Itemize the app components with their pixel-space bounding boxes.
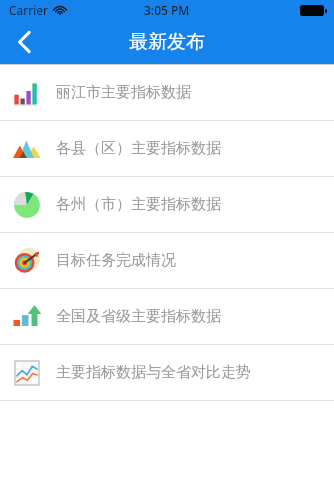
staticText: 丽江市主要指标数据 <box>56 83 191 102</box>
staticText: 主要指标数据与全省对比走势 <box>56 363 251 382</box>
button[interactable]: 丽江市主要指标数据 <box>0 65 334 120</box>
button[interactable]: 各州（市）主要指标数据 <box>0 177 334 232</box>
staticText: Carrier <box>9 2 49 18</box>
button[interactable]: Back <box>0 20 48 64</box>
button[interactable]: 全国及省级主要指标数据 <box>0 289 334 344</box>
button[interactable]: 主要指标数据与全省对比走势 <box>0 345 334 400</box>
staticText: 最新发布 <box>129 30 205 54</box>
staticText: 各县（区）主要指标数据 <box>56 139 221 158</box>
staticText: 3:05 PM <box>144 2 190 18</box>
staticText: 全国及省级主要指标数据 <box>56 307 221 326</box>
button[interactable]: 各县（区）主要指标数据 <box>0 121 334 176</box>
staticText: 各州（市）主要指标数据 <box>56 195 221 214</box>
button[interactable]: 目标任务完成情况 <box>0 233 334 288</box>
staticText: 目标任务完成情况 <box>56 251 176 270</box>
